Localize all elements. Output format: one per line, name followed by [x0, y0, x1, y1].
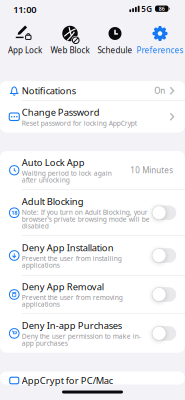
staticText: Deny In-app Purchases [22, 319, 122, 332]
staticText: Waiting period to lock again after unloc… [22, 169, 112, 184]
button[interactable]: App Lock [2, 24, 47, 55]
staticText: Prevent the user from installing applica… [22, 254, 122, 270]
button[interactable]: Toggle [152, 287, 176, 302]
staticText: On [154, 85, 165, 96]
button[interactable]: Web Block [47, 24, 92, 55]
staticText: Auto Lock App [22, 156, 85, 168]
button[interactable]: Notifications [0, 81, 185, 100]
staticText: 5G [141, 4, 152, 14]
staticText: Deny App Installation [22, 241, 114, 254]
button[interactable]: Auto Lock App [0, 151, 185, 189]
staticText: Prevent the user from removing applicati… [22, 293, 123, 309]
staticText: Note: If you turn on Adult Blocking, you… [22, 208, 150, 230]
staticText: 10 Minutes [130, 165, 173, 175]
staticText: Deny App Removal [22, 280, 104, 293]
staticText: Deny the user permission to make in- app… [22, 332, 141, 347]
staticText: App Lock [8, 45, 42, 55]
staticText: 11:00 [13, 3, 36, 15]
staticText: Reset password for locking AppCrypt [22, 119, 137, 127]
button[interactable]: Change Password [0, 101, 185, 132]
button[interactable]: Toggle [152, 248, 176, 263]
staticText: Schedule [97, 45, 132, 55]
staticText: Preferences [136, 45, 183, 55]
staticText: Web Block [50, 45, 89, 55]
staticText: Adult Blocking [22, 195, 84, 208]
button[interactable]: Preferences [137, 24, 182, 55]
staticText: AppCrypt for PC/Mac [22, 374, 113, 387]
button[interactable]: AppCrypt for PC/Mac [0, 371, 185, 384]
staticText: 86 [159, 5, 165, 12]
staticText: Change Password [22, 106, 100, 118]
staticText: 18 [11, 209, 17, 216]
staticText: Notifications [22, 85, 76, 97]
button[interactable]: Toggle [152, 326, 176, 341]
button[interactable]: Toggle [152, 205, 176, 220]
button[interactable]: Schedule [92, 24, 137, 55]
